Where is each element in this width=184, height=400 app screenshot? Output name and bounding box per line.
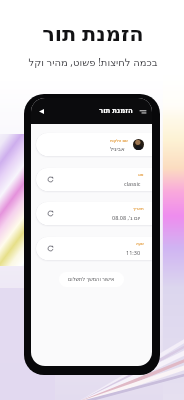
button[interactable]: שם הלקוח <box>36 133 152 156</box>
staticText: אביגיל <box>110 146 125 152</box>
staticText: תאריך <box>133 206 144 211</box>
button[interactable]: שעה <box>36 237 152 260</box>
button[interactable]: Menu <box>138 107 147 116</box>
staticText: שם הלקוח <box>110 138 128 143</box>
button[interactable]: תאריך <box>36 202 152 225</box>
staticText: סוג <box>138 172 144 177</box>
button[interactable]: Back <box>39 106 49 116</box>
button[interactable]: אישור והמשך לתשלום <box>59 272 124 287</box>
staticText: יום ג', 08.08 <box>112 214 141 221</box>
staticText: הזמנת תור <box>99 106 133 116</box>
staticText: אישור והמשך לתשלום <box>68 276 115 283</box>
button[interactable]: סוג <box>36 168 152 191</box>
staticText: שעה <box>136 241 144 246</box>
staticText: classic <box>124 180 141 187</box>
staticText: 11:30 <box>126 249 141 256</box>
staticText: הזמנת תור <box>42 19 144 48</box>
staticText: בכמה לחיצות! פשוט, מהיר וקל <box>28 55 158 69</box>
